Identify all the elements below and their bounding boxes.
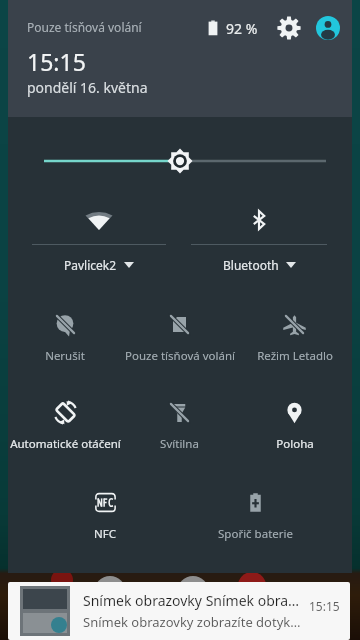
button[interactable]: Bluetooth <box>191 196 327 273</box>
button[interactable]: Snímek obrazovky Snímek obra… <box>8 582 350 640</box>
button[interactable]: Automatické otáčení <box>8 392 122 452</box>
staticText: Režim Letadlo <box>257 348 333 364</box>
staticText: Pouze tísňová volání <box>27 19 142 35</box>
staticText: Bluetooth <box>223 257 279 273</box>
button[interactable]: Settings <box>275 14 303 42</box>
button[interactable]: User profile <box>314 14 342 42</box>
button[interactable]: Spořič baterie <box>198 482 312 542</box>
staticText: Pouze tísňová volání <box>125 348 235 364</box>
button[interactable]: Nerušit <box>8 304 122 364</box>
staticText: 15:15 <box>309 598 340 614</box>
staticText: 15:15 <box>27 46 86 77</box>
staticText: 92 % <box>226 19 258 38</box>
staticText: NFC <box>94 526 116 542</box>
staticText: Snímek obrazovky zobrazíte dotykem. <box>83 613 303 631</box>
staticText: Pavlicek2 <box>64 257 117 273</box>
staticText: Automatické otáčení <box>10 436 121 452</box>
button[interactable] <box>8 117 352 207</box>
staticText: Spořič baterie <box>218 526 293 542</box>
staticText: Nerušit <box>45 348 85 364</box>
button[interactable]: Pouze tísňová volání <box>122 304 237 364</box>
button[interactable]: Poloha <box>237 392 352 452</box>
staticText: Poloha <box>276 436 314 452</box>
button[interactable]: Režim Letadlo <box>237 304 352 364</box>
button[interactable]: Pavlicek2 <box>32 196 166 273</box>
button[interactable]: Svítilna <box>122 392 237 452</box>
button[interactable]: NFC <box>48 482 162 542</box>
staticText: Snímek obrazovky Snímek obra… <box>83 591 300 610</box>
staticText: Svítilna <box>160 436 199 452</box>
staticText: pondělí 16. května <box>27 78 148 97</box>
